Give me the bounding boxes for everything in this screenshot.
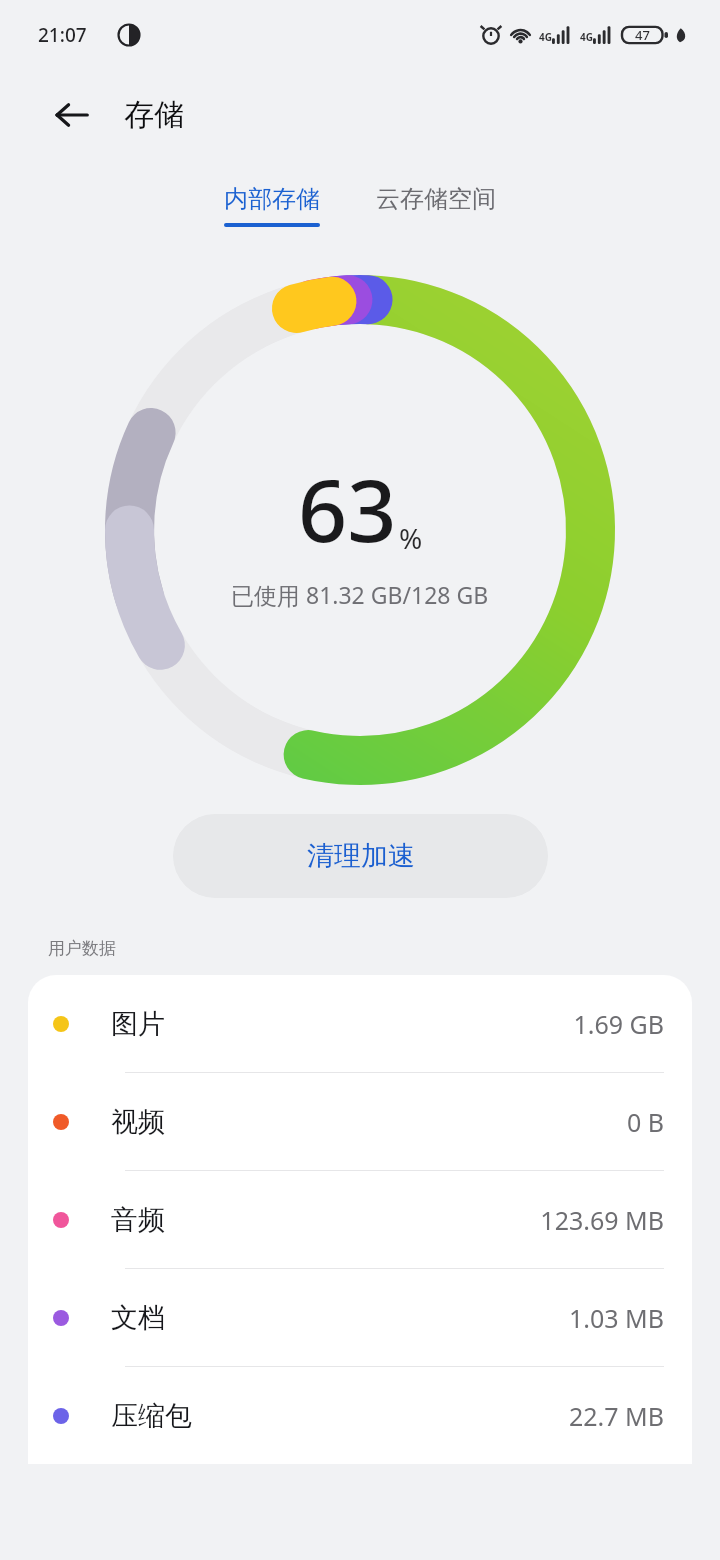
staticText: 视频 bbox=[111, 1105, 165, 1139]
staticText: 47 bbox=[635, 26, 650, 44]
staticText: 4G bbox=[580, 30, 593, 44]
button[interactable]: 压缩包 bbox=[28, 1367, 692, 1464]
staticText: 1.03 MB bbox=[568, 1301, 664, 1335]
staticText: % bbox=[399, 519, 423, 557]
staticText: 4G bbox=[539, 30, 552, 44]
button[interactable]: 音频 bbox=[28, 1171, 692, 1268]
staticText: 用户数据 bbox=[48, 938, 116, 959]
button[interactable]: 清理加速 bbox=[173, 814, 548, 898]
staticText: 已使用 81.32 GB/128 GB bbox=[231, 579, 489, 610]
staticText: 63 bbox=[298, 450, 397, 567]
staticText: 文档 bbox=[111, 1301, 165, 1335]
staticText: 22.7 MB bbox=[568, 1399, 664, 1433]
staticText: 清理加速 bbox=[307, 839, 415, 873]
staticText: 云存储空间 bbox=[376, 184, 496, 214]
staticText: 1.69 GB bbox=[573, 1007, 664, 1041]
staticText: 压缩包 bbox=[111, 1399, 192, 1433]
staticText: 21:07 bbox=[38, 22, 87, 48]
staticText: 图片 bbox=[111, 1007, 165, 1041]
button[interactable]: Back bbox=[44, 87, 100, 143]
staticText: 内部存储 bbox=[224, 184, 320, 214]
staticText: 存储 bbox=[124, 96, 184, 134]
staticText: 音频 bbox=[111, 1203, 165, 1237]
button[interactable]: 内部存储 bbox=[214, 184, 330, 227]
button[interactable]: 图片 bbox=[28, 975, 692, 1072]
button[interactable]: 文档 bbox=[28, 1269, 692, 1366]
button[interactable]: 视频 bbox=[28, 1073, 692, 1170]
button[interactable]: 云存储空间 bbox=[366, 184, 506, 227]
staticText: 123.69 MB bbox=[540, 1203, 664, 1237]
staticText: 0 B bbox=[626, 1105, 664, 1139]
